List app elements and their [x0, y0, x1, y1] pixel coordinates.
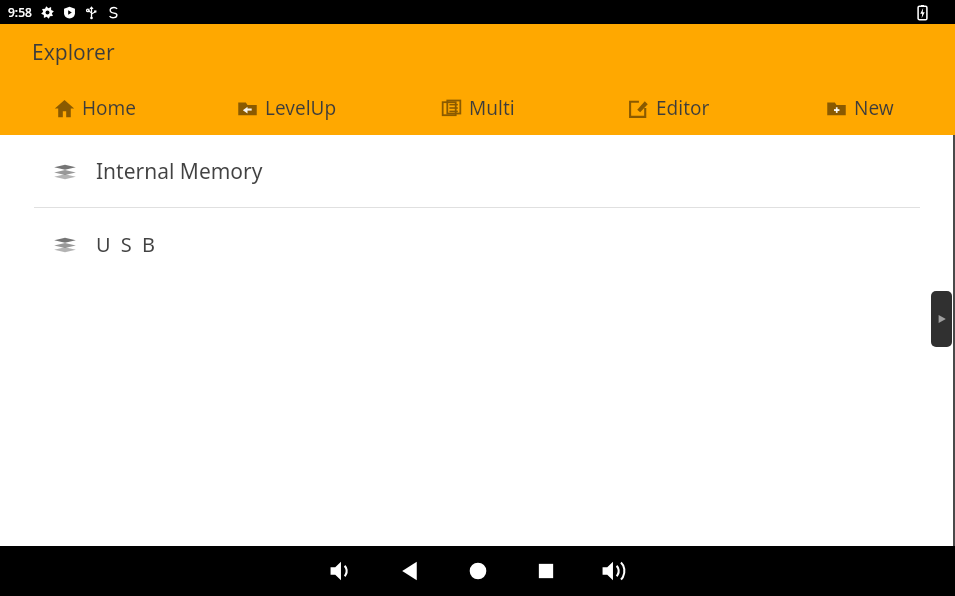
- button[interactable]: New: [764, 81, 955, 135]
- staticText: Editor: [656, 95, 710, 121]
- button[interactable]: Volume down: [322, 551, 362, 591]
- button[interactable]: Back: [390, 551, 430, 591]
- button[interactable]: LevelUp: [191, 81, 382, 135]
- staticText: U S B: [96, 231, 158, 258]
- staticText: LevelUp: [265, 95, 337, 121]
- button[interactable]: Recents: [526, 551, 566, 591]
- button[interactable]: Home: [0, 81, 191, 135]
- button[interactable]: Internal Memory: [0, 135, 955, 207]
- button[interactable]: Editor: [573, 81, 764, 135]
- staticText: New: [854, 95, 894, 121]
- staticText: Explorer: [32, 38, 115, 67]
- button[interactable]: Multi: [382, 81, 573, 135]
- button[interactable]: Volume up: [594, 551, 634, 591]
- staticText: Multi: [469, 95, 515, 121]
- button[interactable]: U S B: [0, 208, 955, 280]
- staticText: 9:58: [8, 4, 32, 20]
- button[interactable]: Open panel: [931, 291, 952, 347]
- staticText: Internal Memory: [96, 157, 263, 186]
- staticText: Home: [82, 95, 137, 121]
- button[interactable]: Home: [458, 551, 498, 591]
